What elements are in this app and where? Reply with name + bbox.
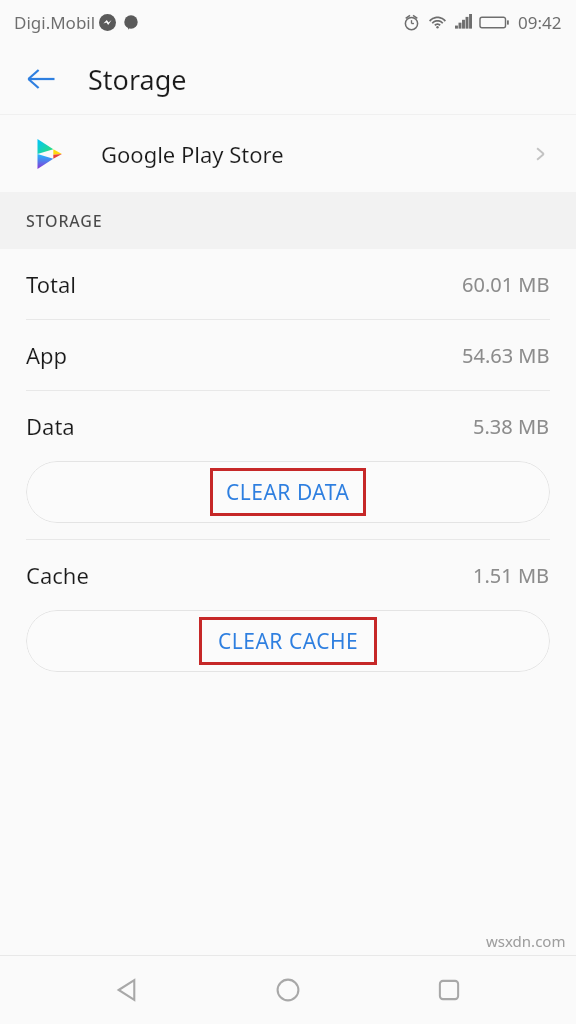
- button[interactable]: Recent apps: [415, 956, 483, 1024]
- button[interactable]: Back: [93, 956, 161, 1024]
- button[interactable]: Home: [254, 956, 322, 1024]
- staticText: CLEAR DATA: [226, 478, 350, 507]
- staticText: 5.38 MB: [473, 413, 550, 440]
- staticText: 09:42: [518, 11, 562, 34]
- button[interactable]: Total: [0, 249, 576, 319]
- button[interactable]: Data: [0, 391, 576, 461]
- staticText: wsxdn.com: [486, 931, 566, 951]
- staticText: 1.51 MB: [473, 562, 550, 589]
- button[interactable]: Back: [18, 56, 64, 102]
- button[interactable]: Cache: [0, 540, 576, 610]
- staticText: Digi.Mobil: [14, 11, 96, 34]
- staticText: 54.63 MB: [462, 342, 550, 369]
- staticText: App: [26, 340, 462, 370]
- button[interactable]: App: [0, 320, 576, 390]
- staticText: Data: [26, 411, 473, 441]
- button[interactable]: CLEAR CACHE: [26, 610, 550, 672]
- staticText: Total: [26, 269, 462, 299]
- staticText: STORAGE: [26, 210, 103, 232]
- staticText: Cache: [26, 560, 473, 590]
- staticText: Google Play Store: [101, 139, 528, 169]
- button[interactable]: CLEAR DATA: [26, 461, 550, 523]
- button[interactable]: Google Play Store: [0, 115, 576, 192]
- staticText: CLEAR CACHE: [218, 627, 359, 656]
- staticText: 60.01 MB: [462, 271, 550, 298]
- staticText: Storage: [88, 61, 187, 98]
